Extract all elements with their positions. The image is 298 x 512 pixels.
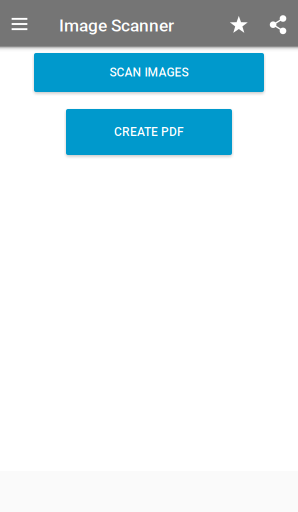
- staticText: SCAN IMAGES: [109, 65, 188, 80]
- staticText: Image Scanner: [59, 15, 174, 36]
- button[interactable]: Favorites: [221, 0, 259, 46]
- button[interactable]: Share: [259, 0, 298, 46]
- button[interactable]: Open navigation menu: [0, 0, 39, 46]
- button[interactable]: CREATE PDF: [66, 109, 232, 155]
- button[interactable]: SCAN IMAGES: [34, 53, 264, 92]
- staticText: CREATE PDF: [114, 125, 184, 139]
